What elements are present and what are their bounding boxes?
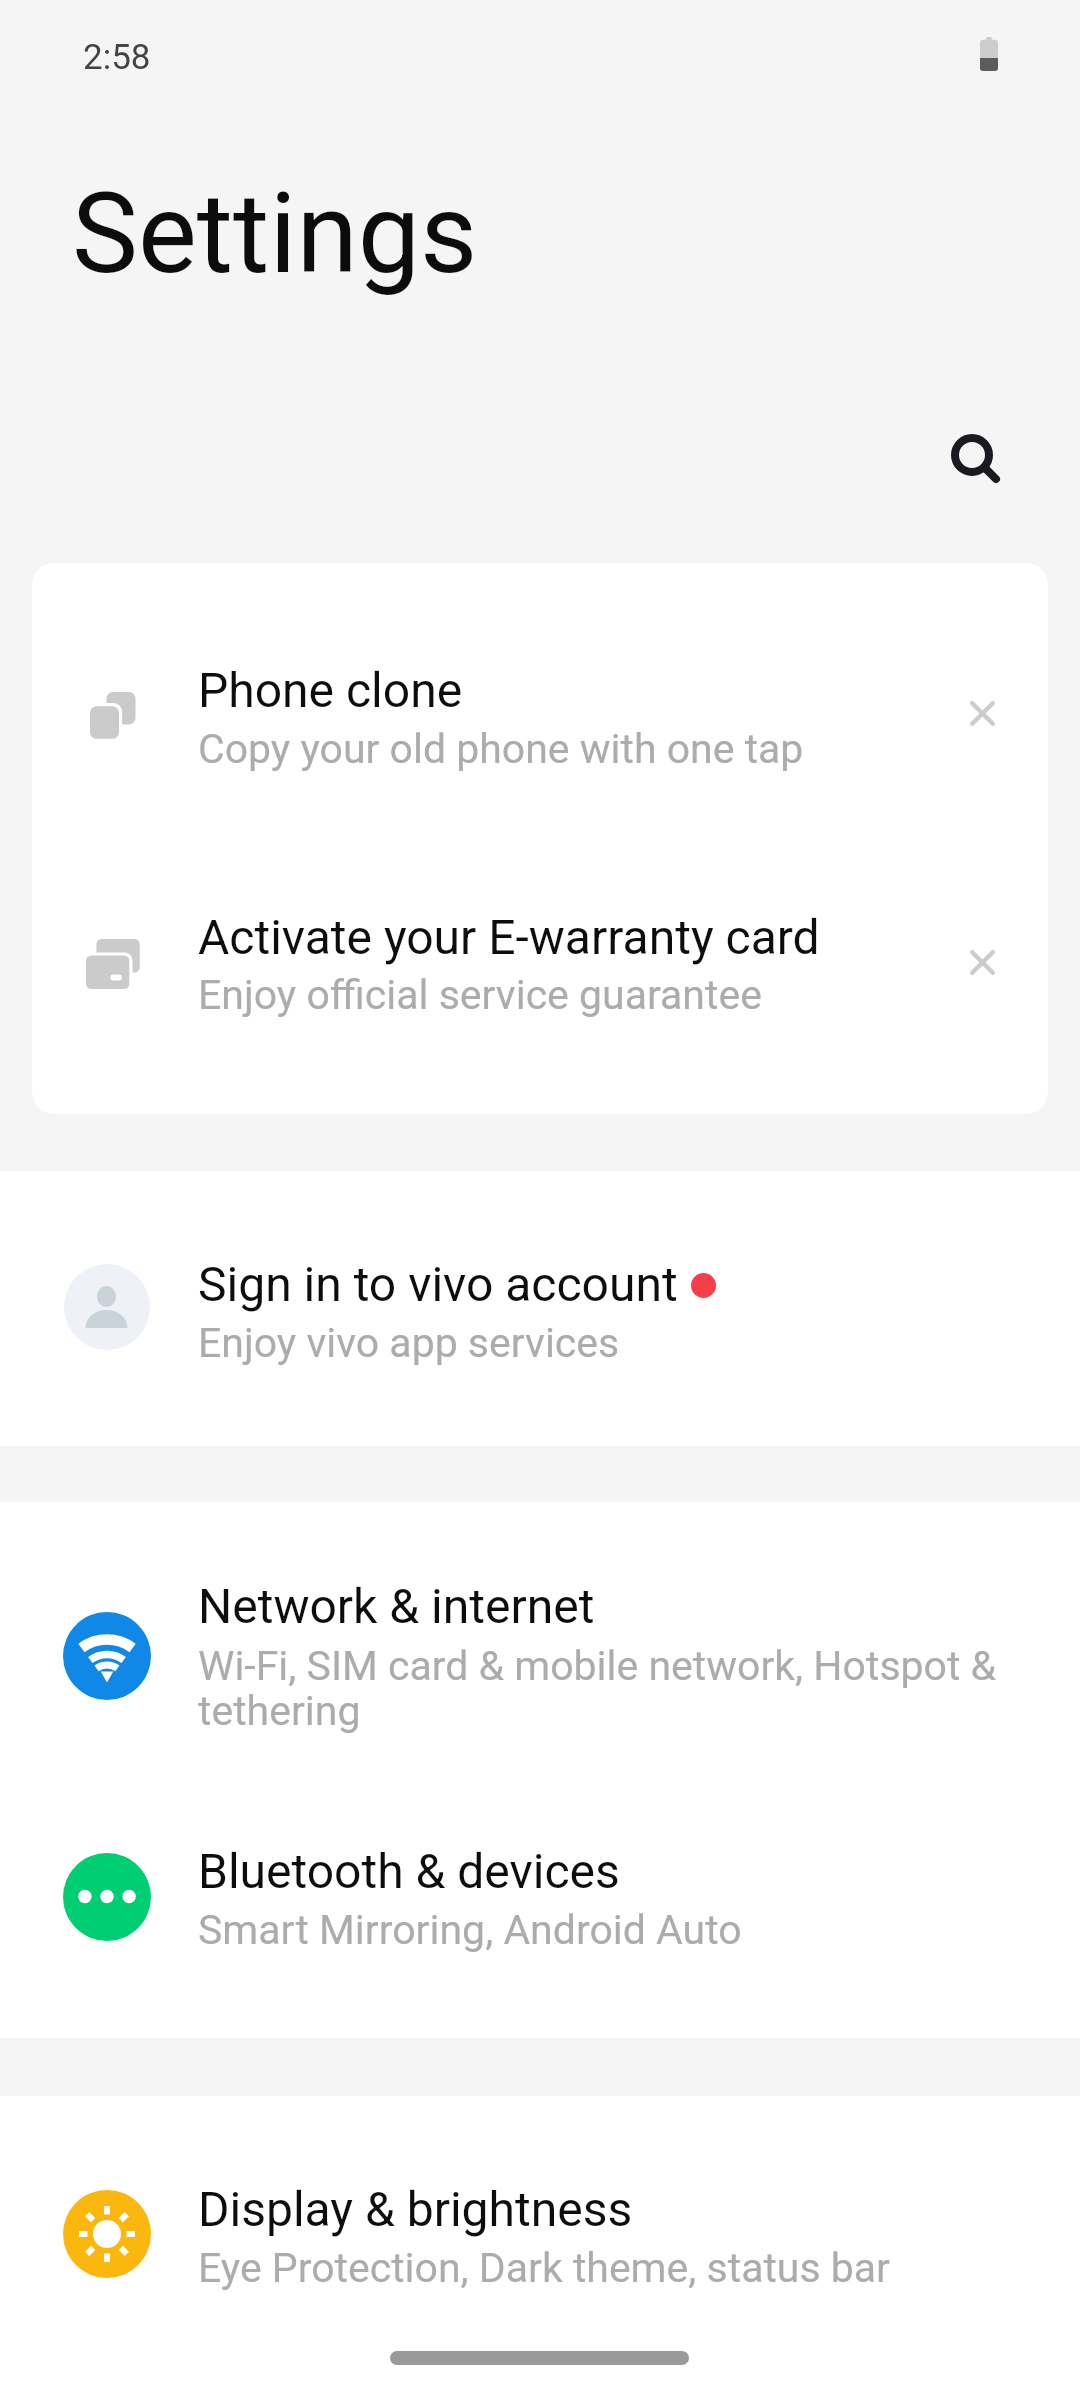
button[interactable]: Dismiss — [939, 670, 1027, 758]
staticText: Display & brightness — [198, 2181, 633, 2237]
button[interactable]: Activate your E-warranty card — [32, 811, 1048, 1086]
button[interactable]: Search — [916, 399, 1036, 519]
button[interactable]: Phone clone — [32, 563, 1048, 838]
staticText: Activate your E-warranty card — [198, 909, 820, 965]
button[interactable]: Network & internet — [0, 1502, 1080, 1802]
staticText: Smart Mirroring, Android Auto — [198, 1906, 742, 1954]
staticText: Bluetooth & devices — [198, 1843, 620, 1899]
button[interactable]: Display & brightness — [0, 2096, 1080, 2392]
button[interactable]: Dismiss — [939, 919, 1027, 1007]
staticText: 2:58 — [83, 37, 151, 78]
staticText: Sign in to vivo account — [198, 1256, 678, 1312]
staticText: Enjoy vivo app services — [198, 1319, 620, 1367]
button[interactable]: Bluetooth & devices — [0, 1802, 1080, 2038]
staticText: Copy your old phone with one tap — [198, 725, 804, 773]
staticText: Phone clone — [198, 662, 463, 718]
staticText: Network & internet — [198, 1578, 595, 1634]
staticText: Wi-Fi, SIM card & mobile network, Hotspo… — [198, 1642, 998, 1735]
staticText: Enjoy official service guarantee — [198, 971, 762, 1019]
button[interactable]: Sign in to vivo account — [0, 1171, 1080, 1446]
staticText: Settings — [72, 169, 478, 299]
staticText: Eye Protection, Dark theme, status bar — [198, 2244, 890, 2292]
